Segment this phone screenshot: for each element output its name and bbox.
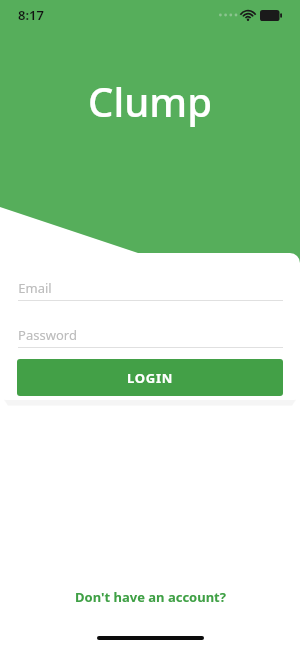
staticText: Don't have an account? <box>75 588 226 606</box>
staticText: Clump <box>88 74 212 128</box>
staticText: 8:17 <box>18 6 44 24</box>
button[interactable]: Don't have an account? <box>61 582 240 612</box>
staticText: Password <box>18 326 77 344</box>
staticText: LOGIN <box>127 369 173 387</box>
other: Home indicator <box>97 636 204 640</box>
button[interactable]: LOGIN <box>17 359 283 396</box>
button[interactable]: Email <box>18 275 283 300</box>
staticText: Email <box>18 279 52 297</box>
button[interactable]: Password <box>18 322 283 347</box>
